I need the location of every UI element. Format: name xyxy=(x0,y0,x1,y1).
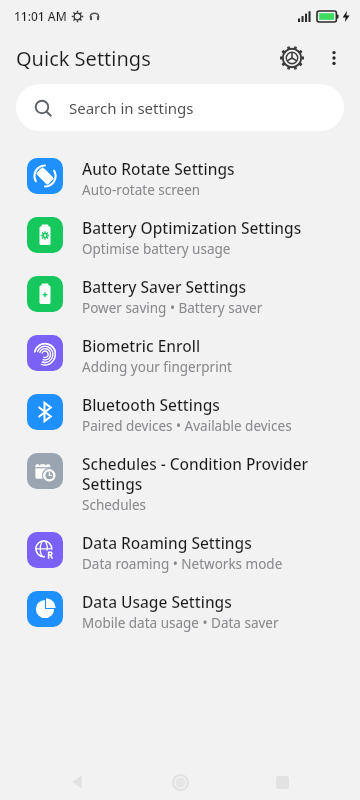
staticText: Data Usage Settings xyxy=(82,591,232,612)
staticText: Schedules xyxy=(82,496,147,514)
staticText: Auto Rotate Settings xyxy=(82,158,235,179)
button[interactable]: Developer settings xyxy=(270,36,314,80)
staticText: Biometric Enroll xyxy=(82,335,201,356)
staticText: Battery Optimization Settings xyxy=(82,217,302,238)
button[interactable]: Home xyxy=(156,764,204,800)
button[interactable]: Data Roaming Settings xyxy=(0,523,360,582)
button[interactable]: Auto Rotate Settings xyxy=(0,149,360,208)
staticText: Bluetooth Settings xyxy=(82,394,220,415)
staticText: Paired devices • Available devices xyxy=(82,417,292,435)
staticText: Data roaming • Networks mode xyxy=(82,555,283,573)
button[interactable]: Bluetooth Settings xyxy=(0,385,360,444)
button[interactable]: Data Usage Settings xyxy=(0,582,360,641)
staticText: Quick Settings xyxy=(16,45,151,72)
staticText: Data Roaming Settings xyxy=(82,532,252,553)
staticText: Power saving • Battery saver xyxy=(82,299,263,317)
staticText: Search in settings xyxy=(69,98,194,118)
button[interactable]: More options xyxy=(314,38,354,78)
button[interactable]: Battery Optimization Settings xyxy=(0,208,360,267)
button[interactable]: Biometric Enroll xyxy=(0,326,360,385)
staticText: 11:01 AM xyxy=(14,8,67,24)
staticText: Schedules - Condition Provider Settings xyxy=(82,453,344,494)
button[interactable]: Recent apps xyxy=(258,764,306,800)
button[interactable]: Battery Saver Settings xyxy=(0,267,360,326)
staticText: Adding your fingerprint xyxy=(82,358,232,376)
button[interactable]: Search in settings xyxy=(16,84,344,131)
staticText: Mobile data usage • Data saver xyxy=(82,614,279,632)
button[interactable]: Schedules - Condition Provider Settings xyxy=(0,444,360,523)
staticText: Optimise battery usage xyxy=(82,240,231,258)
staticText: Battery Saver Settings xyxy=(82,276,246,297)
staticText: Auto-rotate screen xyxy=(82,181,201,199)
